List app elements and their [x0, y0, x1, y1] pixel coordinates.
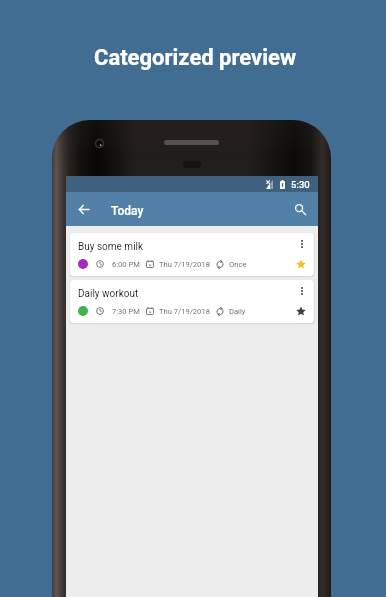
button[interactable]: More options: [294, 236, 310, 252]
button[interactable]: Buy some milk: [70, 233, 314, 276]
staticText: Today: [111, 204, 144, 218]
button[interactable]: Search: [288, 197, 313, 222]
staticText: Daily: [229, 307, 246, 316]
button[interactable]: Star: [293, 305, 309, 317]
staticText: Categorized preview: [94, 45, 297, 71]
button[interactable]: Daily workout: [70, 280, 314, 323]
button[interactable]: More options: [294, 283, 310, 299]
staticText: 7:30 PM: [112, 307, 140, 316]
staticText: Once: [229, 260, 247, 269]
button[interactable]: Back: [71, 197, 96, 222]
staticText: 6:00 PM: [112, 260, 140, 269]
staticText: Thu 7/19/2018: [159, 307, 210, 316]
staticText: Thu 7/19/2018: [159, 260, 210, 269]
staticText: 5:30: [291, 179, 310, 190]
staticText: Daily workout: [78, 288, 139, 300]
button[interactable]: Star: [293, 258, 309, 270]
staticText: Buy some milk: [78, 241, 144, 253]
